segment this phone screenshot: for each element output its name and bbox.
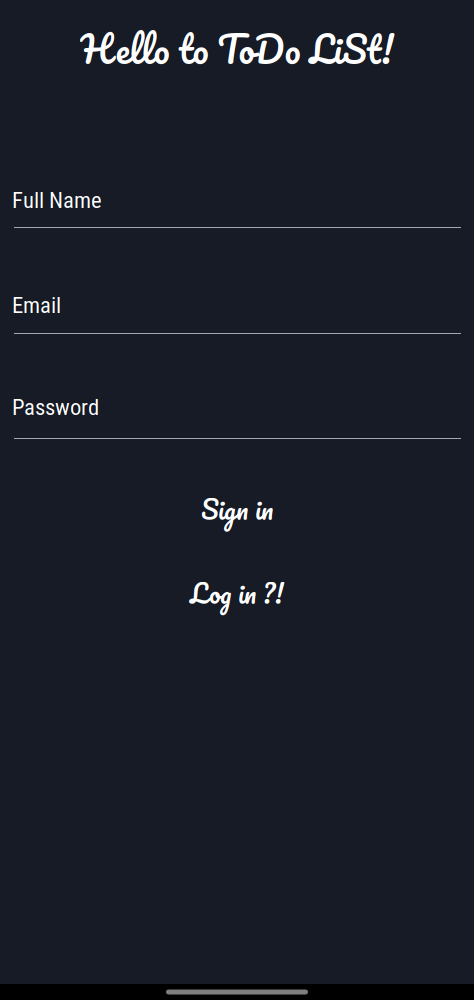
staticText: Sign in [201,487,273,531]
button[interactable]: Full Name [14,187,461,239]
button[interactable]: Log in ?! [0,571,474,615]
staticText: Log in ?! [190,571,284,615]
button[interactable]: Password [14,394,461,450]
button[interactable]: Sign in [0,487,474,531]
button[interactable]: Email [14,292,461,345]
staticText: Email [12,292,61,319]
staticText: Password [12,394,99,421]
staticText: Full Name [12,187,102,214]
staticText: Hello to ToDo LiSt! [80,18,393,80]
